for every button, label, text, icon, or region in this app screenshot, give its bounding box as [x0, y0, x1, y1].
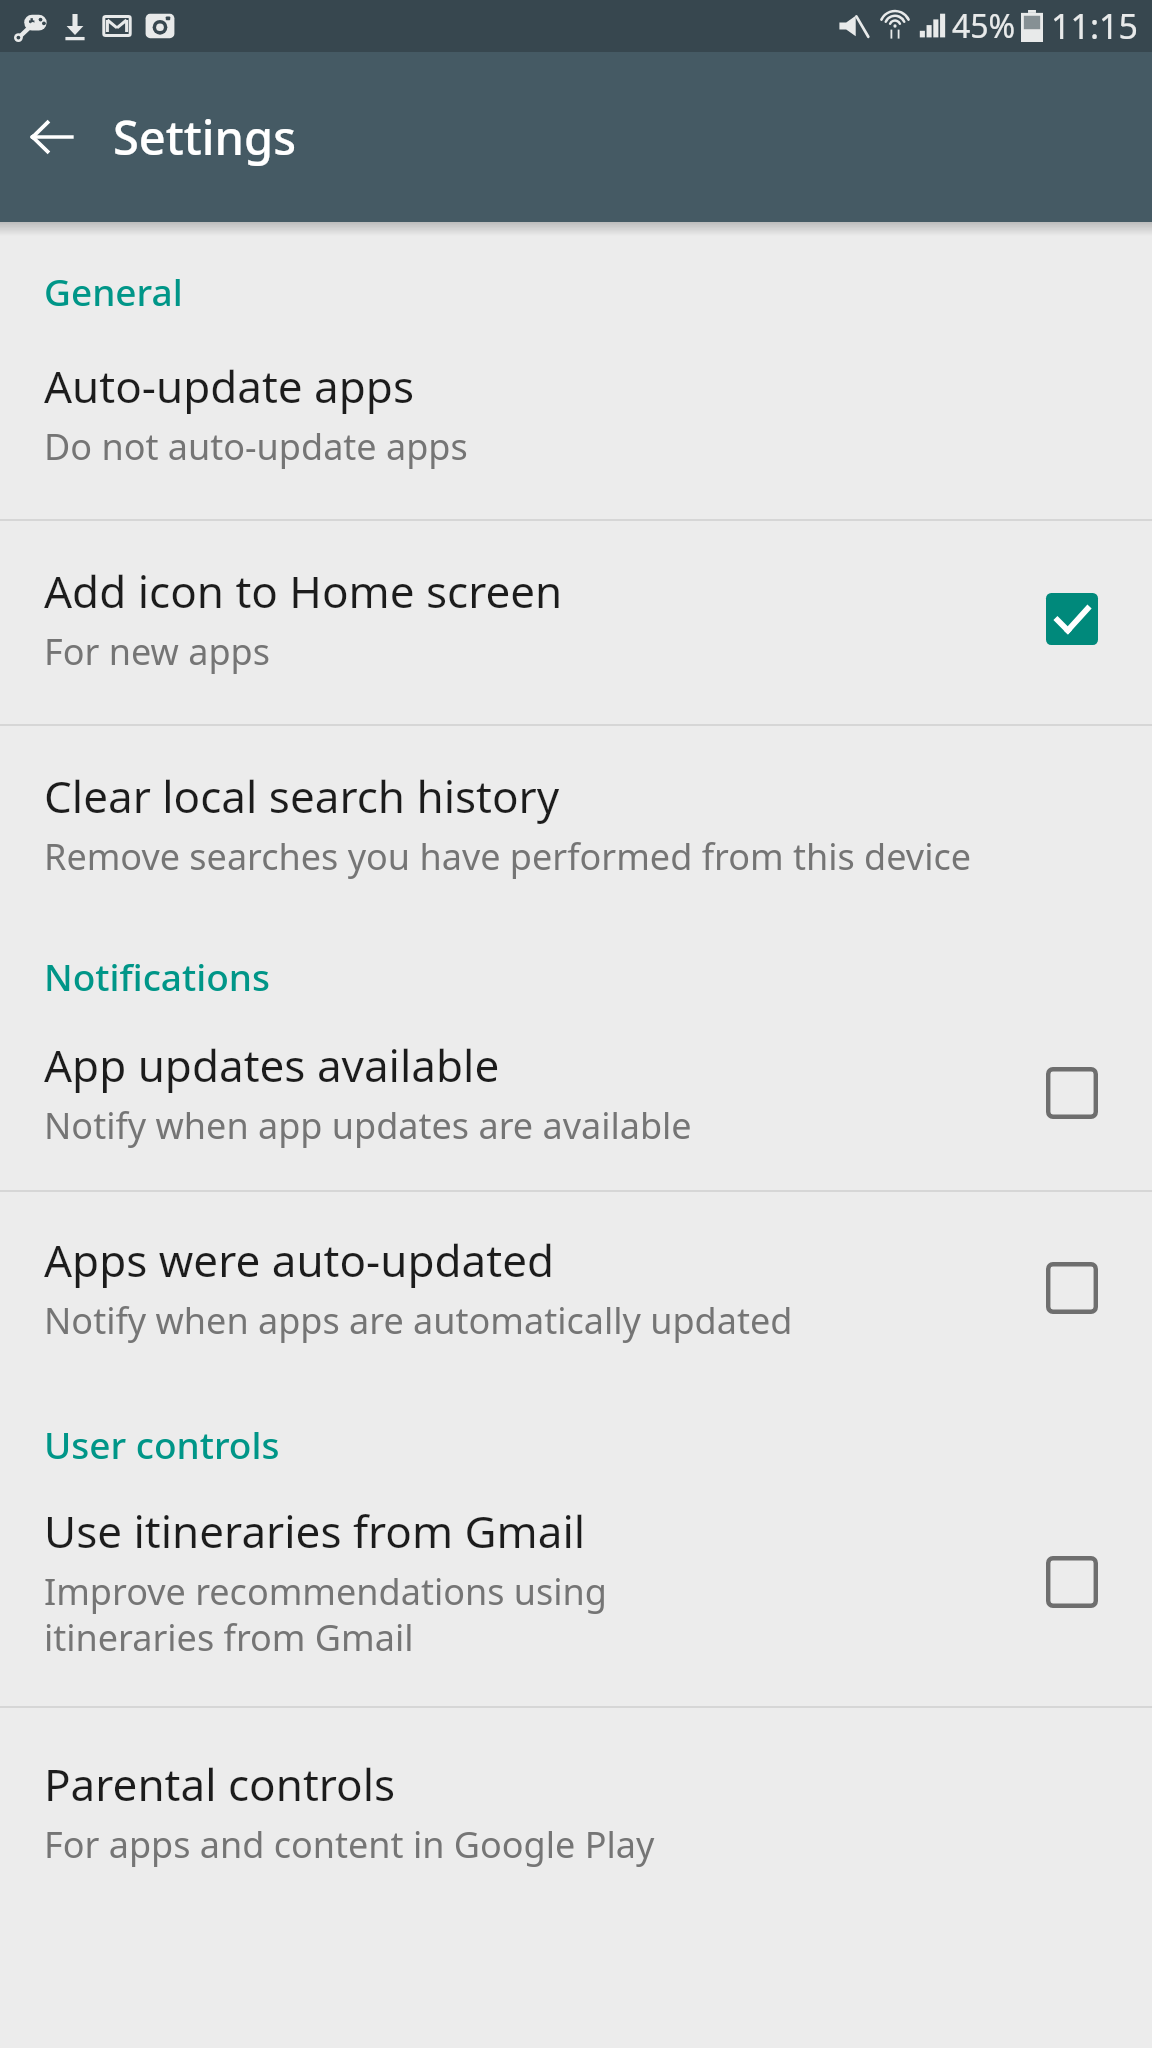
staticText: Use itineraries from Gmail [44, 1501, 586, 1561]
staticText: 11:15 [1051, 3, 1138, 49]
button[interactable]: Unchecked [1036, 1252, 1108, 1324]
staticText: Notify when app updates are available [44, 1101, 692, 1150]
button[interactable]: Clear local search history [0, 726, 1152, 921]
staticText: Clear local search history [44, 766, 560, 826]
staticText: 45% [952, 4, 1016, 48]
staticText: Remove searches you have performed from … [44, 832, 972, 881]
staticText: User controls [44, 1419, 280, 1469]
staticText: App updates available [44, 1035, 500, 1095]
button[interactable]: Parental controls [0, 1708, 1152, 1909]
button[interactable]: Use itineraries from Gmail [0, 1469, 1152, 1706]
staticText: Settings [113, 105, 296, 169]
button[interactable]: Auto-update apps [0, 316, 1152, 519]
staticText: For apps and content in Google Play [44, 1820, 655, 1869]
staticText: General [44, 266, 183, 316]
staticText: For new apps [44, 627, 270, 676]
button[interactable]: Apps were auto-updated [0, 1192, 1152, 1385]
staticText: Improve recommendations using itinerarie… [44, 1567, 644, 1662]
button[interactable]: Unchecked [1036, 1546, 1108, 1618]
button[interactable]: Add icon to Home screen [0, 521, 1152, 724]
staticText: Notifications [44, 951, 270, 1001]
staticText: Do not auto-update apps [44, 422, 468, 471]
button[interactable]: Unchecked [1036, 1057, 1108, 1129]
staticText: Parental controls [44, 1754, 396, 1814]
button[interactable]: App updates available [0, 1001, 1152, 1190]
staticText: Auto-update apps [44, 356, 414, 416]
button[interactable]: Checked [1036, 583, 1108, 655]
button[interactable]: Back [10, 95, 94, 179]
staticText: Add icon to Home screen [44, 561, 563, 621]
staticText: Apps were auto-updated [44, 1230, 555, 1290]
staticText: Notify when apps are automatically updat… [44, 1296, 793, 1345]
